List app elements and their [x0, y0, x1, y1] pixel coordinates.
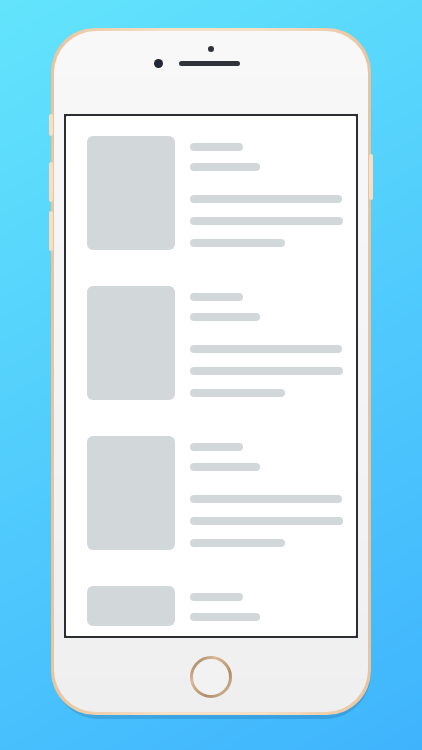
button[interactable]: Power — [369, 154, 373, 200]
button[interactable]: Volume down — [49, 211, 53, 251]
button[interactable]: Volume up — [49, 162, 53, 202]
button[interactable] — [87, 136, 347, 266]
button[interactable] — [87, 436, 347, 566]
button[interactable]: Home — [189, 655, 233, 699]
button[interactable] — [87, 586, 347, 626]
button[interactable] — [87, 286, 347, 416]
button[interactable]: Silent switch — [49, 114, 53, 136]
